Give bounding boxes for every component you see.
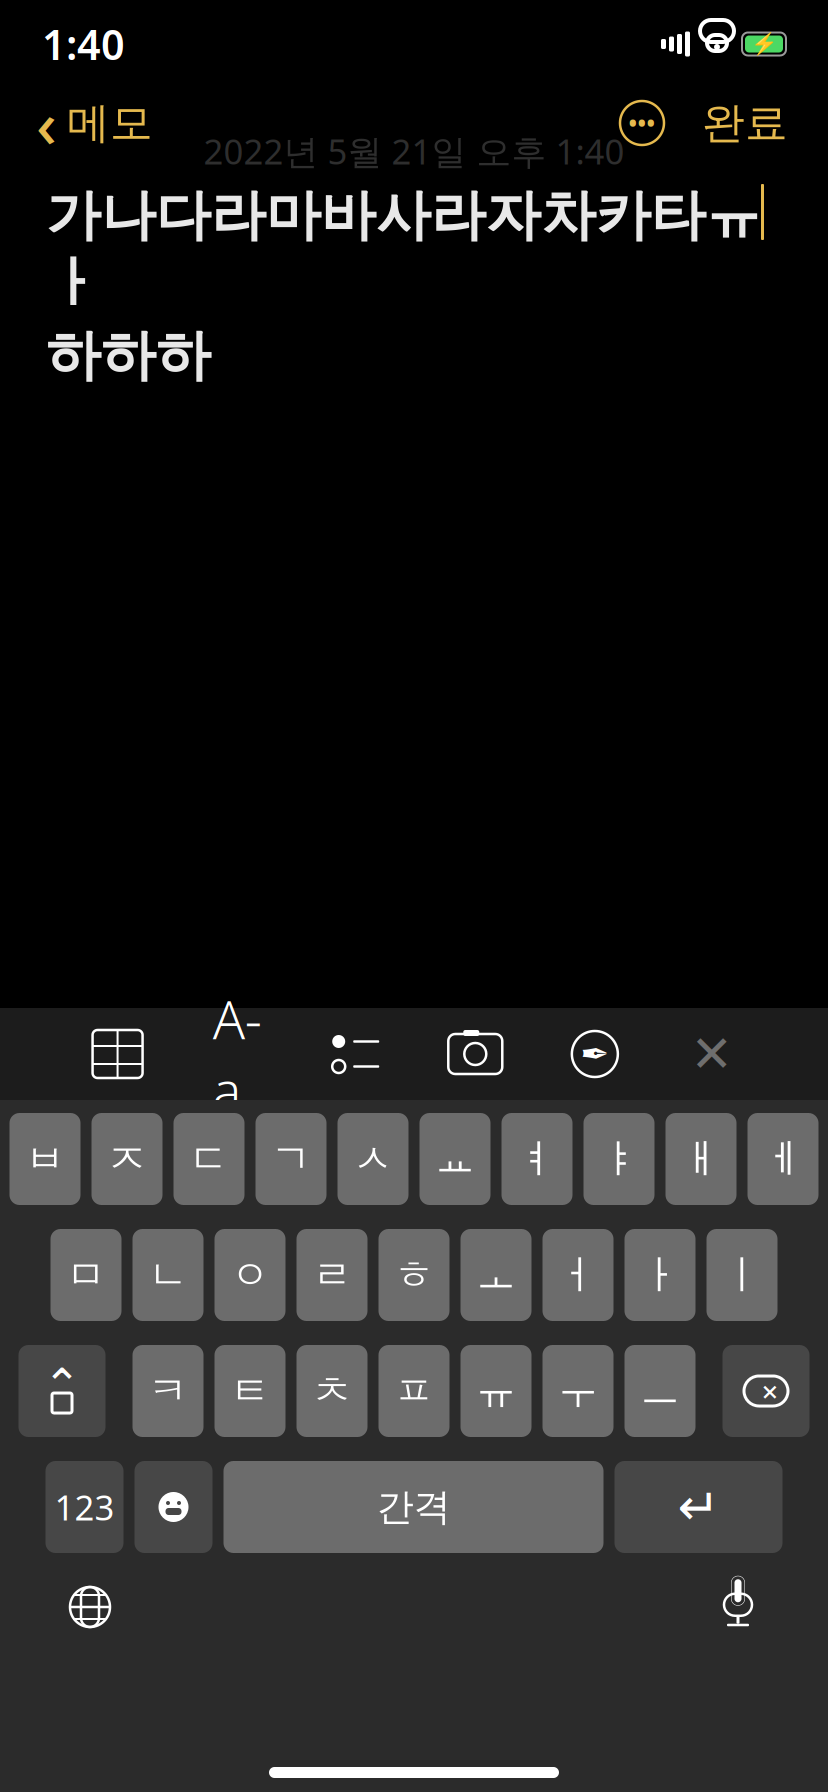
button[interactable]: ㅗ — [460, 1229, 531, 1321]
button[interactable]: Markup — [569, 1028, 621, 1080]
button[interactable]: ㅍ — [378, 1345, 449, 1437]
staticText: 가나다라마바사라자차카타ㅠㅏ — [46, 182, 761, 316]
button[interactable]: Checklist — [330, 1028, 382, 1080]
staticText: ㅐ — [681, 1134, 721, 1183]
staticText: ㅕ — [517, 1134, 557, 1183]
button[interactable]: ㅊ — [296, 1345, 367, 1437]
staticText: ㅛ — [435, 1134, 475, 1183]
staticText: ㅊ — [312, 1366, 352, 1415]
button[interactable]: Delete — [722, 1345, 809, 1437]
staticText: 1:40 — [42, 17, 125, 71]
button[interactable]: Format — [209, 1028, 265, 1080]
staticText: ㅗ — [476, 1250, 516, 1299]
button[interactable]: ㅎ — [378, 1229, 449, 1321]
button[interactable]: ㅕ — [501, 1113, 572, 1205]
button[interactable]: 간격 — [223, 1461, 603, 1553]
button[interactable]: ㅏ — [624, 1229, 695, 1321]
button[interactable]: ㄷ — [173, 1113, 244, 1205]
button[interactable]: ㅌ — [214, 1345, 285, 1437]
staticText: 완료 — [702, 97, 788, 149]
staticText: ‹ — [36, 80, 57, 165]
staticText: ㅣ — [722, 1250, 762, 1299]
button[interactable]: ㅋ — [132, 1345, 203, 1437]
button[interactable]: ㅛ — [419, 1113, 490, 1205]
staticText: ✒ — [580, 1034, 609, 1074]
button[interactable]: ‹ — [30, 91, 159, 155]
staticText: ⚡ — [750, 32, 777, 56]
button[interactable]: ㄴ — [132, 1229, 203, 1321]
button[interactable]: ㄹ — [296, 1229, 367, 1321]
staticText: ㅑ — [599, 1134, 639, 1183]
staticText: ••• — [628, 108, 655, 138]
staticText: 하하하 — [46, 322, 211, 389]
button[interactable]: ㅓ — [542, 1229, 613, 1321]
staticText: ㅂ — [25, 1134, 65, 1183]
staticText: ㅇ — [230, 1250, 270, 1299]
button[interactable]: ㅂ — [9, 1113, 80, 1205]
button[interactable]: 완료 — [692, 91, 798, 155]
button[interactable]: ㅔ — [747, 1113, 818, 1205]
button[interactable]: ㅐ — [665, 1113, 736, 1205]
button[interactable]: ㅑ — [583, 1113, 654, 1205]
button[interactable]: Camera — [446, 1028, 504, 1080]
button[interactable]: Shift — [18, 1345, 105, 1437]
staticText: 123 — [54, 1484, 114, 1530]
staticText: ㅠ — [476, 1366, 516, 1415]
button[interactable]: ㅈ — [91, 1113, 162, 1205]
staticText: 2022년 5월 21일 오후 1:40 — [203, 128, 624, 174]
staticText: ⌃ — [43, 1359, 81, 1411]
button[interactable]: Close — [685, 1028, 737, 1080]
staticText: ㅏ — [640, 1250, 680, 1299]
staticText: ㅅ — [353, 1134, 393, 1183]
button[interactable]: Dictate — [702, 1571, 774, 1643]
staticText: ㄱ — [271, 1134, 311, 1183]
staticText: ㅜ — [558, 1366, 598, 1415]
button[interactable]: ㅁ — [50, 1229, 121, 1321]
staticText: ㄹ — [312, 1250, 352, 1299]
staticText: ㅡ — [640, 1366, 680, 1415]
button[interactable]: Emoji — [134, 1461, 212, 1553]
staticText: Aa — [213, 983, 262, 1125]
staticText: ㅋ — [148, 1366, 188, 1415]
button[interactable]: Next keyboard — [54, 1571, 126, 1643]
staticText: ✕ — [690, 1025, 732, 1083]
button[interactable]: ㅣ — [706, 1229, 777, 1321]
staticText: ㅍ — [394, 1366, 434, 1415]
staticText: × — [761, 1371, 778, 1410]
button[interactable]: ㅠ — [460, 1345, 531, 1437]
button[interactable]: ㅅ — [337, 1113, 408, 1205]
button[interactable]: ㅡ — [624, 1345, 695, 1437]
button[interactable]: ㅇ — [214, 1229, 285, 1321]
staticText: ㄴ — [148, 1250, 188, 1299]
button[interactable]: ㅜ — [542, 1345, 613, 1437]
staticText: ㅈ — [107, 1134, 147, 1183]
button[interactable]: More — [614, 95, 670, 151]
staticText: ↵ — [677, 1478, 719, 1536]
button[interactable]: ㄱ — [255, 1113, 326, 1205]
staticText: ㄷ — [189, 1134, 229, 1183]
staticText: ㅔ — [763, 1134, 803, 1183]
staticText: 간격 — [376, 1484, 450, 1530]
staticText: ㅓ — [558, 1250, 598, 1299]
staticText: 메모 — [67, 97, 153, 149]
button[interactable]: Return — [614, 1461, 782, 1553]
staticText: ㅁ — [66, 1250, 106, 1299]
staticText: ㅎ — [394, 1250, 434, 1299]
staticText: ㅌ — [230, 1366, 270, 1415]
button[interactable]: 123 — [45, 1461, 123, 1553]
button[interactable]: Table — [91, 1028, 145, 1080]
